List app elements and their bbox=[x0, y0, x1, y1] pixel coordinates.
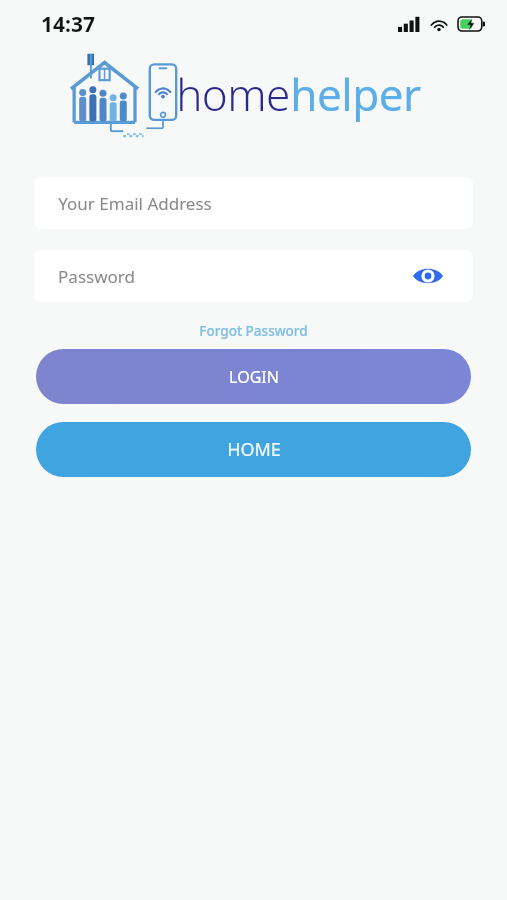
staticText: Your Email Address bbox=[58, 192, 212, 215]
staticText: Forgot Password bbox=[199, 322, 308, 340]
staticText: helper bbox=[290, 64, 421, 124]
staticText: home bbox=[176, 64, 290, 124]
staticText: Password bbox=[58, 265, 135, 288]
staticText: HOME bbox=[227, 437, 281, 462]
staticText: 14:37 bbox=[41, 10, 95, 39]
button[interactable]: LOGIN bbox=[36, 349, 471, 404]
button[interactable]: HOME bbox=[36, 422, 471, 477]
button[interactable]: Password bbox=[34, 250, 473, 302]
button[interactable]: Your Email Address bbox=[34, 177, 473, 229]
button[interactable]: Forgot Password bbox=[193, 320, 314, 342]
staticText: LOGIN bbox=[229, 366, 279, 388]
button[interactable]: Show password bbox=[411, 259, 445, 293]
